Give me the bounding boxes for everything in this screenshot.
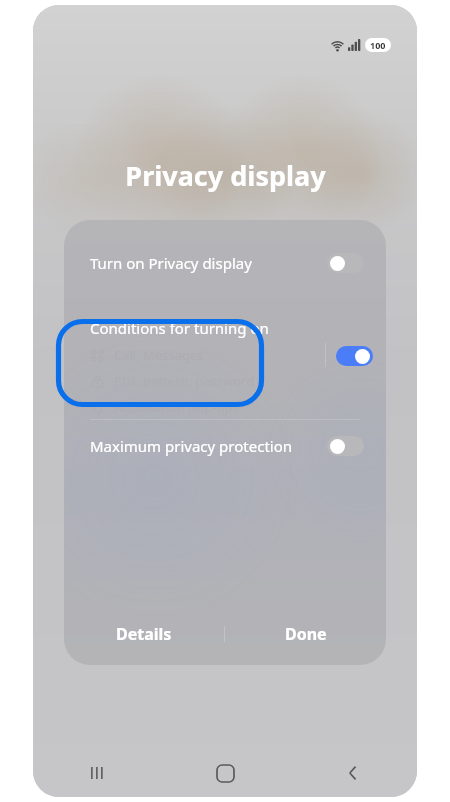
- staticText: Turn on Privacy display: [90, 253, 252, 273]
- button[interactable]: Off: [327, 436, 364, 456]
- button[interactable]: Back: [289, 749, 417, 797]
- staticText: Privacy display: [125, 157, 326, 194]
- button[interactable]: Maximum privacy protection: [64, 420, 386, 472]
- staticText: Done: [285, 623, 327, 645]
- button[interactable]: Turn on Privacy display: [64, 234, 386, 292]
- staticText: 100: [370, 39, 386, 51]
- staticText: Maximum privacy protection: [90, 436, 293, 456]
- button[interactable]: Done: [225, 603, 386, 665]
- button[interactable]: Notification pop-ups: [90, 394, 239, 420]
- staticText: Details: [116, 623, 172, 645]
- staticText: Notification pop-ups: [114, 398, 239, 416]
- button[interactable]: Off: [327, 253, 364, 273]
- staticText: Conditions for turning on: [90, 318, 269, 338]
- button[interactable]: Details: [64, 603, 224, 665]
- button[interactable]: On: [336, 346, 373, 366]
- button[interactable]: Home: [161, 749, 289, 797]
- button[interactable]: Recents: [33, 749, 161, 797]
